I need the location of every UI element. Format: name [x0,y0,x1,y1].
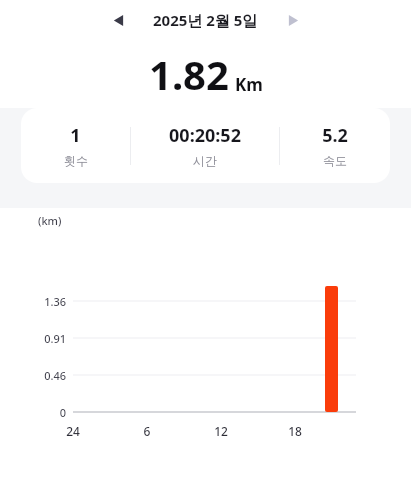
staticText: 00:20:52 [169,123,241,148]
staticText: 0.46 [22,368,66,383]
staticText: 0.91 [22,331,66,346]
staticText: 속도 [323,153,347,168]
staticText: 1.36 [22,294,66,309]
staticText: Km [235,73,263,96]
staticText: 1 [70,123,81,148]
button[interactable]: Previous day [101,3,135,37]
staticText: 12 [201,423,241,439]
staticText: 0 [22,405,66,420]
staticText: 5.2 [322,123,348,148]
staticText: 시간 [193,153,217,168]
button[interactable]: 5.2 [280,117,390,174]
staticText: 횟수 [64,153,88,168]
staticText: 1.82 [149,47,229,101]
staticText: 18 [275,423,315,439]
button[interactable]: 1 [21,117,130,174]
button[interactable]: 2025년 2월 5일 [153,10,258,30]
staticText: 6 [127,423,167,439]
staticText: (km) [38,213,62,228]
button[interactable]: Next day [276,3,310,37]
button[interactable]: 00:20:52 [131,117,279,174]
staticText: 24 [53,423,93,439]
